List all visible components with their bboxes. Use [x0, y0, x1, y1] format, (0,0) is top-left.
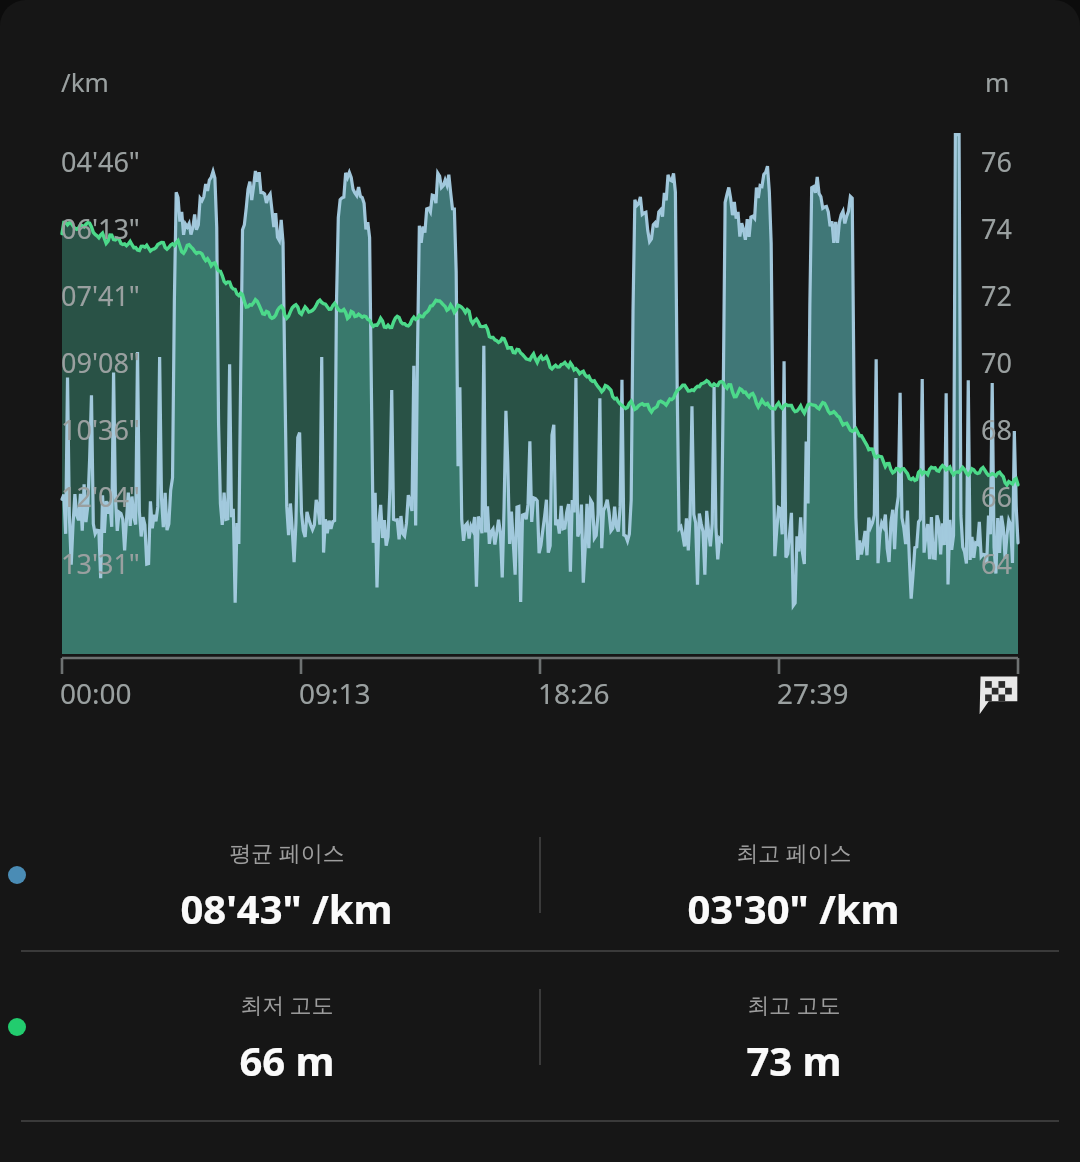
- staticText: 00:00: [60, 674, 132, 712]
- button[interactable]: Pace and elevation chart: [62, 132, 1018, 654]
- staticText: 27:39: [777, 674, 849, 712]
- button[interactable]: 최고 고도: [541, 967, 1046, 1087]
- staticText: m: [985, 64, 1010, 99]
- staticText: 03'30" /km: [687, 881, 900, 935]
- staticText: 09:13: [299, 674, 371, 712]
- staticText: 72: [981, 277, 1012, 314]
- button[interactable]: Finish: [975, 671, 1021, 717]
- staticText: 66 m: [239, 1033, 335, 1087]
- staticText: 76: [981, 143, 1012, 180]
- staticText: 평균 페이스: [229, 837, 345, 867]
- staticText: 68: [981, 411, 1012, 448]
- button[interactable]: 최고 페이스: [541, 815, 1046, 935]
- staticText: 66: [981, 478, 1012, 515]
- staticText: 10'36": [61, 411, 140, 448]
- staticText: 74: [981, 210, 1012, 247]
- staticText: 최고 고도: [747, 989, 841, 1019]
- staticText: 06'13": [61, 210, 140, 247]
- staticText: /km: [61, 64, 109, 99]
- button[interactable]: 최저 고도: [34, 967, 539, 1087]
- staticText: 73 m: [746, 1033, 842, 1087]
- staticText: 64: [981, 545, 1012, 582]
- staticText: 18:26: [538, 674, 610, 712]
- staticText: 04'46": [61, 143, 140, 180]
- staticText: 07'41": [61, 277, 140, 314]
- staticText: 13'31": [61, 545, 140, 582]
- staticText: 최고 페이스: [736, 837, 852, 867]
- staticText: 09'08": [61, 344, 140, 381]
- staticText: 70: [981, 344, 1012, 381]
- staticText: 08'43" /km: [180, 881, 393, 935]
- button[interactable]: 평균 페이스: [34, 815, 539, 935]
- staticText: 최저 고도: [240, 989, 334, 1019]
- staticText: 12'04": [61, 478, 140, 515]
